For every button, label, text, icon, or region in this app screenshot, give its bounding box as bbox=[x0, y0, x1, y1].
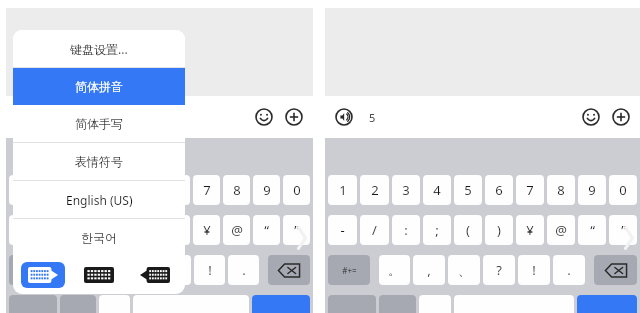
staticText: 简体手写 bbox=[75, 116, 123, 131]
button[interactable]: / bbox=[40, 215, 68, 245]
button[interactable]: Comma bbox=[99, 295, 130, 313]
button[interactable]: 6 bbox=[485, 175, 513, 205]
button[interactable]: : bbox=[392, 215, 420, 245]
button[interactable]: 表情符号 bbox=[13, 143, 185, 180]
staticText: 、 bbox=[135, 262, 148, 278]
staticText: 5 bbox=[464, 181, 472, 199]
button[interactable]: 7 bbox=[516, 175, 544, 205]
button[interactable]: 3 bbox=[392, 175, 420, 205]
button[interactable]: 한국어 bbox=[13, 219, 185, 256]
staticText: 8 bbox=[233, 181, 241, 199]
button[interactable]: Comma bbox=[419, 295, 451, 313]
button[interactable]: ) bbox=[485, 215, 513, 245]
button[interactable]: Add bbox=[281, 104, 307, 130]
button[interactable]: ! bbox=[194, 255, 225, 285]
button[interactable]: 5 bbox=[454, 175, 482, 205]
button[interactable]: Dock keyboard left bbox=[21, 262, 65, 288]
button[interactable]: Backspace bbox=[594, 255, 637, 285]
button[interactable] bbox=[12, 104, 243, 130]
staticText: 4 bbox=[433, 181, 441, 199]
button[interactable]: @ bbox=[547, 215, 575, 245]
button[interactable]: 5 bbox=[361, 104, 570, 130]
staticText: @ bbox=[231, 221, 243, 239]
button[interactable]: 简体拼音 bbox=[13, 68, 185, 105]
button[interactable]: Full keyboard bbox=[77, 262, 121, 288]
button[interactable]: 、 bbox=[126, 255, 157, 285]
button[interactable]: 。 bbox=[59, 255, 89, 285]
button[interactable]: - bbox=[9, 215, 37, 245]
button[interactable]: 1 bbox=[9, 175, 37, 205]
button[interactable]: 1 bbox=[328, 175, 357, 205]
button[interactable]: ( bbox=[454, 215, 482, 245]
button[interactable]: Voice bbox=[331, 104, 357, 130]
button[interactable]: 6 bbox=[163, 175, 190, 205]
button[interactable]: Backspace bbox=[268, 255, 310, 285]
button[interactable]: Add bbox=[608, 104, 634, 130]
button[interactable]: Return bbox=[577, 295, 637, 313]
button[interactable]: “ bbox=[253, 215, 280, 245]
button[interactable]: 3 bbox=[71, 175, 99, 205]
button[interactable]: ) bbox=[163, 215, 190, 245]
button[interactable]: 0 bbox=[283, 175, 310, 205]
button[interactable]: #+= bbox=[328, 255, 370, 285]
button[interactable]: ” bbox=[283, 215, 310, 245]
button[interactable]: ” bbox=[609, 215, 637, 245]
button[interactable]: / bbox=[360, 215, 389, 245]
button[interactable]: 8 bbox=[547, 175, 575, 205]
staticText: . bbox=[567, 261, 571, 279]
button[interactable]: 键盘设置... bbox=[13, 30, 185, 67]
button[interactable]: . bbox=[228, 255, 259, 285]
button[interactable]: 2 bbox=[40, 175, 68, 205]
button[interactable]: 9 bbox=[253, 175, 280, 205]
button[interactable]: ( bbox=[133, 215, 160, 245]
button[interactable]: Emoji bbox=[251, 104, 277, 130]
button[interactable]: Return bbox=[252, 295, 310, 313]
button[interactable]: 5 bbox=[133, 175, 160, 205]
button[interactable]: ¥ bbox=[516, 215, 544, 245]
button[interactable]: @ bbox=[223, 215, 250, 245]
button[interactable]: 、 bbox=[448, 255, 480, 285]
staticText: 한국어 bbox=[81, 230, 117, 245]
button[interactable]: #+= bbox=[9, 255, 50, 285]
button[interactable]: . bbox=[553, 255, 585, 285]
button[interactable]: 2 bbox=[360, 175, 389, 205]
button[interactable]: , bbox=[92, 255, 123, 285]
button[interactable]: 7 bbox=[193, 175, 220, 205]
button[interactable]: , bbox=[413, 255, 445, 285]
button[interactable]: Dock keyboard right bbox=[133, 262, 177, 288]
staticText: 7 bbox=[203, 181, 211, 199]
button[interactable]: 4 bbox=[102, 175, 130, 205]
button[interactable]: 0 bbox=[609, 175, 637, 205]
button[interactable]: ; bbox=[102, 215, 130, 245]
button[interactable]: 8 bbox=[223, 175, 250, 205]
button[interactable]: : bbox=[71, 215, 99, 245]
staticText: 8 bbox=[557, 181, 565, 199]
staticText: 7 bbox=[526, 181, 534, 199]
staticText: ! bbox=[532, 261, 536, 279]
button[interactable]: “ bbox=[578, 215, 606, 245]
button[interactable]: 简体手写 bbox=[13, 105, 185, 142]
button[interactable]: 4 bbox=[423, 175, 451, 205]
staticText: #+= bbox=[22, 265, 37, 276]
button[interactable]: ; bbox=[423, 215, 451, 245]
button[interactable]: English (US) bbox=[13, 181, 185, 218]
button[interactable]: - bbox=[328, 215, 357, 245]
button[interactable]: ! bbox=[518, 255, 550, 285]
button[interactable]: Emoji bbox=[578, 104, 604, 130]
button[interactable]: 。 bbox=[379, 255, 410, 285]
button[interactable]: ? bbox=[160, 255, 191, 285]
staticText: 5 bbox=[369, 110, 376, 125]
staticText: 3 bbox=[402, 181, 410, 199]
button[interactable]: 9 bbox=[578, 175, 606, 205]
staticText: 9 bbox=[588, 181, 596, 199]
button[interactable]: ¥ bbox=[193, 215, 220, 245]
button[interactable]: ? bbox=[483, 255, 515, 285]
